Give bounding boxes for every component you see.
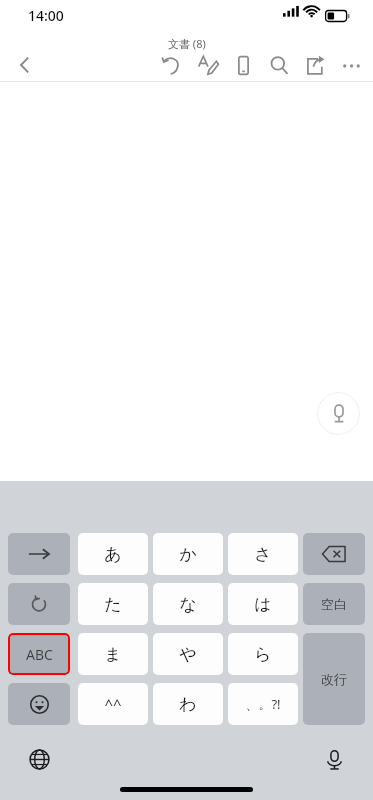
staticText: 文書 (8) [168,36,206,51]
button[interactable]: Italic [48,760,97,800]
button[interactable]: Phone layout [225,48,261,82]
staticText: は [254,594,272,615]
button[interactable]: Font color [195,760,244,800]
button[interactable]: あ [78,533,148,575]
button[interactable]: ^^ [78,683,148,725]
button[interactable]: さ [228,533,298,575]
staticText: か [179,544,197,565]
button[interactable]: は [228,583,298,625]
staticText: ら [254,644,272,665]
button[interactable]: Change keyboard [22,742,56,776]
button[interactable]: ABC [8,633,70,675]
button[interactable]: Underline [97,760,146,800]
button[interactable]: Share [297,48,333,82]
staticText: 空白 [321,596,347,612]
button[interactable]: か [153,533,223,575]
staticText: ^^ [104,694,122,714]
button[interactable]: Undo [153,48,189,82]
button[interactable]: Dictate [317,392,360,435]
button[interactable]: 改行 [303,633,365,725]
button[interactable]: More options [333,48,369,82]
staticText: あ [104,544,122,565]
button[interactable]: Highlight [146,760,195,800]
staticText: U [116,770,127,790]
button[interactable]: わ [153,683,223,725]
button[interactable]: Search [261,48,297,82]
button[interactable]: undo [8,583,70,625]
button[interactable]: Hide keyboard [324,760,373,800]
staticText: や [179,644,197,665]
staticText: ま [104,644,122,665]
button[interactable]: な [153,583,223,625]
button[interactable]: や [153,633,223,675]
staticText: ABC [26,645,53,664]
button[interactable]: arrow [8,533,70,575]
staticText: 、。?! [245,695,281,713]
button[interactable]: Bold [0,760,48,800]
staticText: さ [254,544,272,565]
staticText: た [104,594,122,615]
staticText: 14:00 [28,6,64,25]
button[interactable]: Voice input [317,742,351,776]
button[interactable]: ら [228,633,298,675]
staticText: な [179,594,197,615]
button[interactable]: 、。?! [228,683,298,725]
button[interactable]: del [303,533,365,575]
button[interactable]: た [78,583,148,625]
button[interactable]: Edit [189,48,225,82]
button[interactable]: 空白 [303,583,365,625]
button[interactable]: Format options [244,760,274,800]
button[interactable]: Back [8,48,42,82]
button[interactable]: ま [78,633,148,675]
staticText: 改行 [321,671,347,687]
staticText: わ [179,694,197,715]
button[interactable]: emoji [8,683,70,725]
